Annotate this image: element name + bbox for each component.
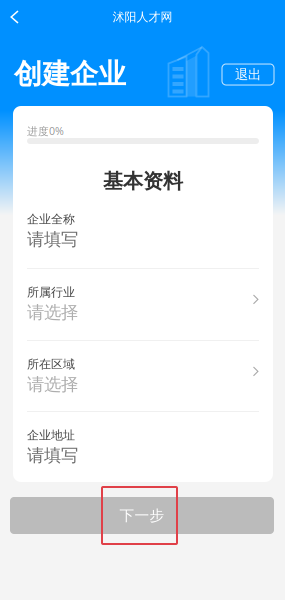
staticText: 企业地址: [27, 428, 75, 443]
button[interactable]: 企业全称: [13, 196, 273, 268]
staticText: 请填写: [27, 229, 78, 250]
staticText: 企业全称: [27, 212, 75, 227]
button[interactable]: 下一步: [10, 497, 274, 534]
button[interactable]: Back: [1, 2, 28, 32]
button[interactable]: 企业地址: [13, 412, 273, 484]
staticText: 所在区域: [27, 357, 75, 372]
button[interactable]: 所属行业: [13, 269, 273, 340]
staticText: 基本资料: [103, 169, 183, 194]
staticText: 沭阳人才网: [112, 10, 172, 24]
staticText: 进度0%: [27, 124, 64, 138]
staticText: 请选择: [27, 302, 78, 323]
button[interactable]: 退出: [222, 64, 274, 85]
staticText: 请选择: [27, 374, 78, 395]
staticText: 创建企业: [14, 57, 126, 91]
staticText: 退出: [235, 66, 261, 83]
staticText: 下一步: [119, 506, 164, 524]
staticText: 请填写: [27, 445, 78, 466]
button[interactable]: 所在区域: [13, 341, 273, 411]
staticText: 所属行业: [27, 285, 75, 300]
